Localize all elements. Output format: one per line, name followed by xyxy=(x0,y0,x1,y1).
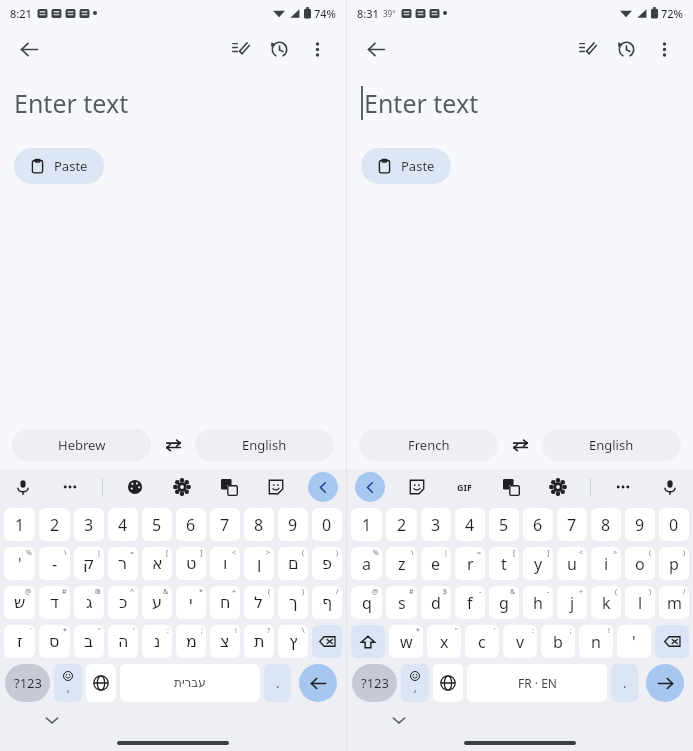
button[interactable]: Change keyboard language xyxy=(86,664,116,702)
button[interactable]: w xyxy=(389,625,423,658)
button[interactable]: f xyxy=(455,586,485,619)
button[interactable]: More options xyxy=(298,30,336,68)
button[interactable]: Swap languages xyxy=(151,428,195,462)
button[interactable]: i xyxy=(591,547,621,580)
button[interactable]: מ xyxy=(176,625,206,658)
button[interactable]: Stickers xyxy=(402,472,432,502)
button[interactable]: ך xyxy=(278,586,308,619)
button[interactable]: . xyxy=(264,664,291,702)
button[interactable]: More xyxy=(55,472,85,502)
button[interactable]: פ xyxy=(312,547,342,580)
button[interactable]: English xyxy=(195,429,334,461)
button[interactable]: 4 xyxy=(108,508,138,541)
button[interactable]: Hebrew xyxy=(12,429,151,461)
button[interactable]: b xyxy=(541,625,575,658)
button[interactable]: q xyxy=(351,586,382,619)
button[interactable]: r xyxy=(455,547,485,580)
button[interactable]: t xyxy=(489,547,519,580)
button[interactable]: c xyxy=(465,625,499,658)
button[interactable]: ט xyxy=(176,547,206,580)
button[interactable]: 1 xyxy=(4,508,35,541)
button[interactable]: Themes xyxy=(120,472,150,502)
button[interactable]: v xyxy=(503,625,537,658)
button[interactable]: History xyxy=(260,30,298,68)
button[interactable]: n xyxy=(579,625,613,658)
button[interactable]: Back xyxy=(357,30,395,68)
button[interactable]: FR · EN xyxy=(467,664,607,702)
button[interactable]: 3 xyxy=(74,508,104,541)
button[interactable]: u xyxy=(557,547,587,580)
button[interactable]: Expand xyxy=(308,472,338,502)
button[interactable]: ק xyxy=(74,547,104,580)
button[interactable]: ז xyxy=(4,625,35,658)
button[interactable]: k xyxy=(591,586,621,619)
button[interactable]: ר xyxy=(108,547,138,580)
button[interactable]: עברית xyxy=(120,664,260,702)
button[interactable]: s xyxy=(386,586,417,619)
button[interactable]: 4 xyxy=(455,508,485,541)
button[interactable]: ע xyxy=(142,586,172,619)
button[interactable]: h xyxy=(523,586,553,619)
button[interactable]: ם xyxy=(278,547,308,580)
button[interactable]: French xyxy=(359,429,498,461)
button[interactable]: ל xyxy=(244,586,274,619)
button[interactable]: More options xyxy=(645,30,683,68)
button[interactable]: 7 xyxy=(557,508,587,541)
button[interactable]: o xyxy=(625,547,655,580)
button[interactable]: Voice input xyxy=(8,472,38,502)
button[interactable]: א xyxy=(142,547,172,580)
button[interactable]: ץ xyxy=(278,625,308,658)
button[interactable]: Shift xyxy=(351,625,385,658)
button[interactable]: 5 xyxy=(489,508,519,541)
button[interactable]: ד xyxy=(39,586,70,619)
button[interactable]: English xyxy=(542,429,681,461)
button[interactable]: 8 xyxy=(591,508,621,541)
button[interactable]: d xyxy=(421,586,451,619)
button[interactable]: ג xyxy=(74,586,104,619)
button[interactable]: Voice input xyxy=(655,472,685,502)
button[interactable]: Translate xyxy=(214,472,244,502)
button[interactable]: 6 xyxy=(176,508,206,541)
button[interactable]: נ xyxy=(142,625,172,658)
button[interactable]: 0 xyxy=(659,508,689,541)
button[interactable]: Handwriting xyxy=(569,30,607,68)
button[interactable]: Stickers xyxy=(261,472,291,502)
button[interactable]: History xyxy=(607,30,645,68)
button[interactable]: 1 xyxy=(351,508,382,541)
button[interactable]: 6 xyxy=(523,508,553,541)
button[interactable]: Settings xyxy=(543,472,573,502)
button[interactable]: 0 xyxy=(312,508,342,541)
button[interactable]: צ xyxy=(210,625,240,658)
button[interactable]: Delete xyxy=(312,625,342,658)
button[interactable]: e xyxy=(421,547,451,580)
button[interactable]: ו xyxy=(210,547,240,580)
button[interactable]: 2 xyxy=(39,508,70,541)
button[interactable]: י xyxy=(176,586,206,619)
button[interactable]: Change keyboard language xyxy=(433,664,463,702)
button[interactable]: l xyxy=(625,586,655,619)
button[interactable]: z xyxy=(386,547,417,580)
button[interactable]: Back xyxy=(10,30,48,68)
button[interactable]: ן xyxy=(244,547,274,580)
button[interactable]: כ xyxy=(108,586,138,619)
button[interactable]: 7 xyxy=(210,508,240,541)
button[interactable]: 9 xyxy=(278,508,308,541)
button[interactable]: p xyxy=(659,547,689,580)
button[interactable]: 8 xyxy=(244,508,274,541)
button[interactable]: ב xyxy=(74,625,104,658)
button[interactable]: 3 xyxy=(421,508,451,541)
button[interactable]: Delete xyxy=(655,625,689,658)
button[interactable]: Emoji xyxy=(401,664,429,702)
button[interactable]: Paste xyxy=(14,148,104,184)
button[interactable]: y xyxy=(523,547,553,580)
button[interactable]: ' xyxy=(4,547,35,580)
button[interactable]: ?123 xyxy=(352,664,397,702)
button[interactable]: Handwriting xyxy=(222,30,260,68)
button[interactable]: . xyxy=(611,664,638,702)
button[interactable]: a xyxy=(351,547,382,580)
button[interactable]: - xyxy=(39,547,70,580)
button[interactable]: Swap languages xyxy=(498,428,542,462)
button[interactable]: 2 xyxy=(386,508,417,541)
button[interactable]: ת xyxy=(244,625,274,658)
button[interactable]: j xyxy=(557,586,587,619)
